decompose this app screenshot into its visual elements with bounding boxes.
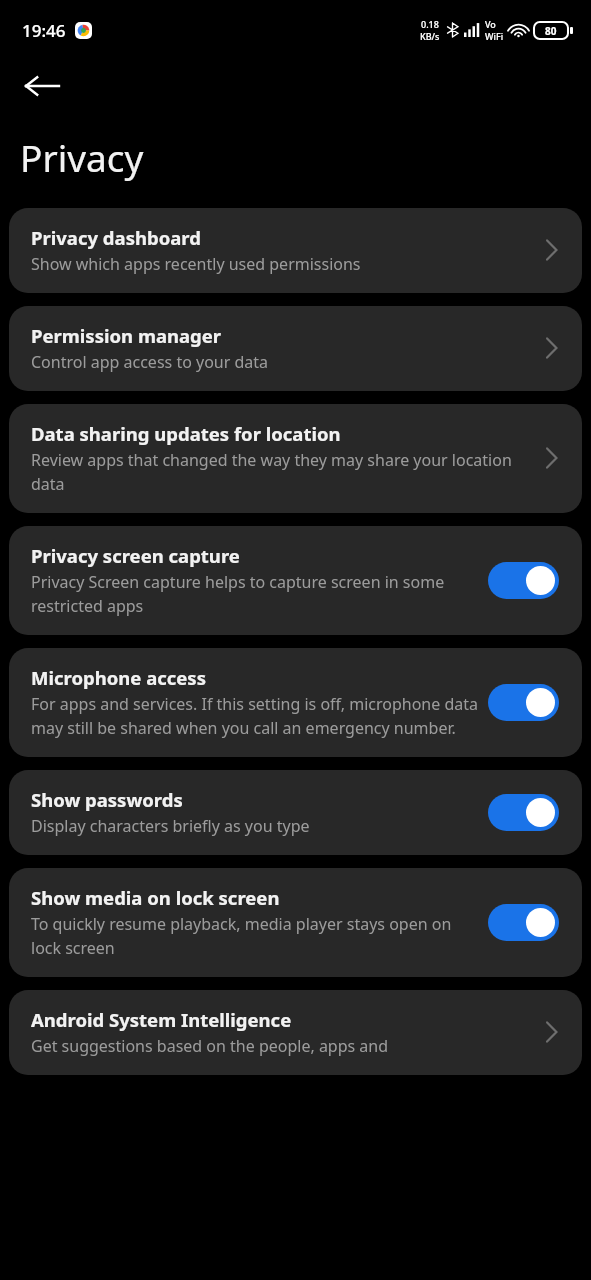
staticText: Android System Intelligence: [31, 1007, 292, 1032]
staticText: KB/s: [420, 30, 440, 42]
staticText: Control app access to your data: [31, 351, 269, 373]
staticText: Privacy: [20, 132, 144, 182]
staticText: Privacy Screen capture helps to capture …: [31, 571, 480, 617]
staticText: Permission manager: [31, 323, 222, 348]
other: Open: [534, 1015, 568, 1049]
button[interactable]: Toggle: [488, 562, 559, 599]
staticText: Data sharing updates for location: [31, 421, 341, 446]
other: Open: [534, 441, 568, 475]
button[interactable]: Back: [18, 62, 66, 110]
staticText: Show media on lock screen: [31, 885, 280, 910]
staticText: 19:46: [22, 19, 66, 42]
button[interactable]: Privacy dashboard: [9, 208, 582, 293]
staticText: Show which apps recently used permission…: [31, 253, 361, 275]
staticText: 0.18: [421, 18, 439, 30]
button[interactable]: Toggle: [488, 904, 559, 941]
button[interactable]: Data sharing updates for location: [9, 404, 582, 513]
other: Open: [534, 331, 568, 365]
staticText: Display characters briefly as you type: [31, 815, 310, 837]
button[interactable]: Toggle: [488, 794, 559, 831]
button[interactable]: Permission manager: [9, 306, 582, 391]
staticText: Privacy screen capture: [31, 543, 240, 568]
button[interactable]: Android System Intelligence: [9, 990, 582, 1075]
staticText: Show passwords: [31, 787, 183, 812]
staticText: Privacy dashboard: [31, 225, 201, 250]
button[interactable]: Toggle: [488, 684, 559, 721]
staticText: To quickly resume playback, media player…: [31, 913, 480, 959]
staticText: Get suggestions based on the people, app…: [31, 1035, 389, 1057]
staticText: For apps and services. If this setting i…: [31, 693, 480, 739]
staticText: Review apps that changed the way they ma…: [31, 449, 526, 495]
button[interactable]: Privacy screen capture: [9, 526, 582, 635]
staticText: 80: [545, 24, 557, 38]
button[interactable]: Show media on lock screen: [9, 868, 582, 977]
staticText: Microphone access: [31, 665, 206, 690]
button[interactable]: Show passwords: [9, 770, 582, 855]
staticText: WiFi: [485, 30, 504, 42]
staticText: Vo: [485, 18, 496, 30]
button[interactable]: Microphone access: [9, 648, 582, 757]
other: Open: [534, 233, 568, 267]
